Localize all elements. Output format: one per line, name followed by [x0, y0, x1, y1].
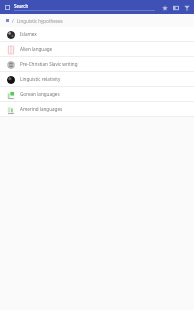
- staticText: Alien language: [20, 46, 53, 52]
- staticText: Linguistic relativity: [20, 76, 61, 82]
- button[interactable]: Amerind languages: [0, 102, 194, 116]
- button[interactable]: Bookmark: [159, 2, 170, 13]
- button[interactable]: Linguistic relativity: [0, 72, 194, 86]
- staticText: /: [12, 18, 14, 24]
- button[interactable]: Alien language: [0, 42, 194, 56]
- button[interactable]: Gorean languages: [0, 87, 194, 101]
- staticText: Linguistic hypotheses: [17, 18, 63, 24]
- staticText: Search: [14, 3, 29, 9]
- button[interactable]: Home: [5, 18, 10, 23]
- staticText: Pre-Christian Slavic writing: [20, 61, 78, 67]
- button[interactable]: Labels: [170, 2, 181, 13]
- button[interactable]: Filter: [181, 2, 192, 13]
- staticText: Amerind languages: [20, 106, 63, 112]
- button[interactable]: Pre-Christian Slavic writing: [0, 57, 194, 71]
- button[interactable]: Menu: [2, 2, 12, 12]
- button[interactable]: Search: [14, 3, 155, 11]
- button[interactable]: Islamex: [0, 27, 194, 41]
- staticText: Gorean languages: [20, 91, 60, 97]
- staticText: Islamex: [20, 31, 37, 37]
